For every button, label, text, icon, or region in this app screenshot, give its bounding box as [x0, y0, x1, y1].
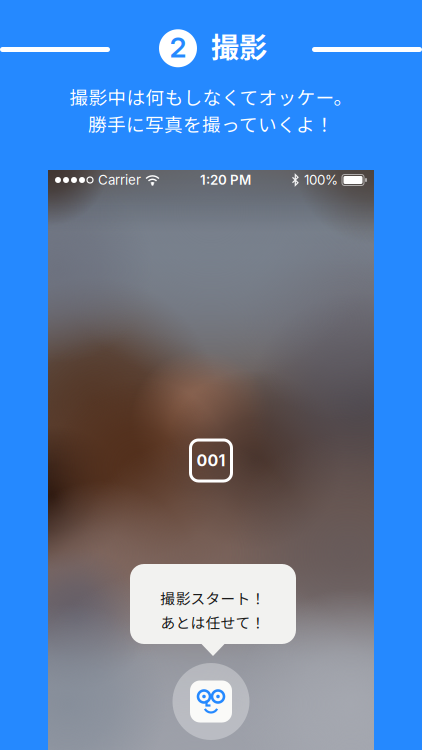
staticText: 100%: [304, 172, 338, 188]
staticText: 2: [169, 30, 186, 64]
staticText: 撮影スタート！: [160, 587, 265, 608]
staticText: 001: [196, 451, 225, 470]
staticText: 1:20 PM: [200, 172, 251, 188]
staticText: 撮影中は何もしなくてオッケー。: [69, 83, 352, 110]
staticText: 勝手に写真を撮っていくよ！: [88, 110, 334, 137]
staticText: 撮影: [211, 25, 267, 65]
staticText: あとは任せて！: [160, 611, 265, 633]
staticText: Carrier: [98, 172, 141, 188]
